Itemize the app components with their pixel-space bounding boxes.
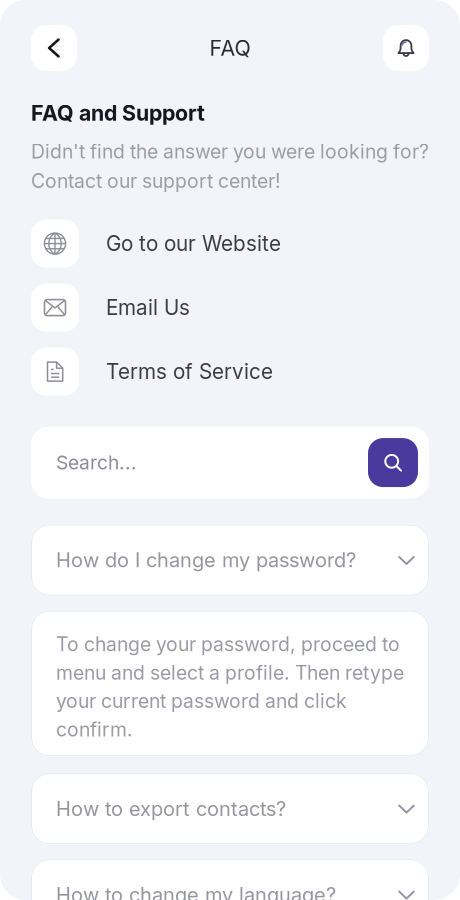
staticText: Go to our Website [106, 231, 281, 256]
button[interactable]: How do I change my password? [31, 525, 429, 596]
staticText: Search... [56, 451, 137, 474]
button[interactable]: Back [31, 25, 77, 71]
button[interactable]: Search [368, 438, 418, 487]
button[interactable]: How to change my language? [31, 859, 429, 900]
staticText: Contact our support center! [31, 169, 281, 193]
button[interactable]: How to export contacts? [31, 773, 429, 844]
staticText: menu and select a profile. Then retype [56, 661, 404, 684]
button[interactable]: Terms of Service [31, 348, 429, 396]
button[interactable]: Notifications [383, 25, 429, 71]
staticText: Email Us [106, 295, 190, 320]
staticText: How to export contacts? [56, 797, 286, 821]
staticText: FAQ and Support [31, 100, 205, 126]
staticText: Terms of Service [106, 359, 273, 384]
staticText: How to change my language? [56, 883, 336, 900]
staticText: your current password and click [56, 689, 347, 713]
staticText: How do I change my password? [56, 548, 356, 572]
button[interactable]: Go to our Website [31, 220, 429, 268]
staticText: confirm. [56, 718, 133, 741]
staticText: To change your password, proceed to [56, 633, 400, 656]
staticText: FAQ [209, 35, 250, 61]
button[interactable]: Email Us [31, 284, 429, 332]
staticText: Didn't find the answer you were looking … [31, 140, 429, 163]
